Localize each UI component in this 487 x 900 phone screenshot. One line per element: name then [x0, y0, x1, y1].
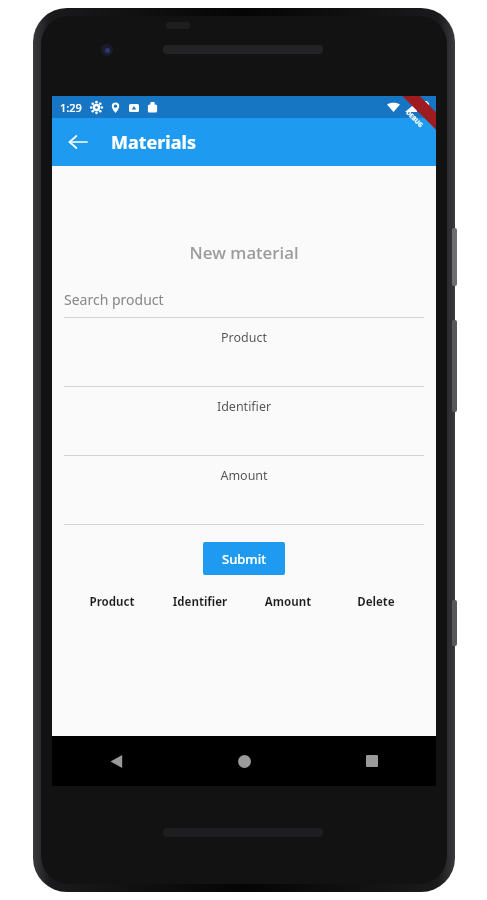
button[interactable]: Identifier — [52, 387, 436, 455]
button[interactable]: Back — [94, 739, 138, 783]
staticText: DEBUG — [404, 109, 425, 129]
button[interactable]: Product — [52, 318, 436, 386]
staticText: 1:29 — [60, 100, 82, 115]
staticText: Identifier — [52, 398, 436, 415]
staticText: Delete — [332, 594, 420, 610]
staticText: Product — [52, 329, 436, 346]
button[interactable]: Back — [58, 122, 98, 162]
staticText: Materials — [111, 130, 196, 155]
staticText: Amount — [244, 594, 332, 610]
staticText: Search product — [64, 290, 164, 309]
staticText: Amount — [52, 467, 436, 484]
button[interactable]: Submit — [203, 542, 285, 575]
staticText: Identifier — [156, 594, 244, 610]
staticText: Product — [68, 594, 156, 610]
staticText: Submit — [222, 550, 267, 568]
button[interactable]: Home — [222, 739, 266, 783]
button[interactable]: Recent apps — [350, 739, 394, 783]
staticText: New material — [52, 241, 436, 264]
button[interactable]: Amount — [52, 456, 436, 524]
button[interactable]: Search product — [52, 286, 436, 312]
